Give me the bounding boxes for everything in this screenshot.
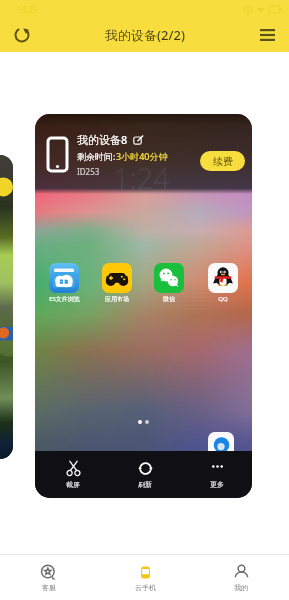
button[interactable]: 1:24 bbox=[35, 114, 252, 498]
button[interactable]: 云手机 bbox=[97, 555, 193, 600]
button[interactable]: 截屏 bbox=[57, 451, 89, 498]
button[interactable]: 客服 bbox=[0, 555, 97, 600]
staticText: 刷新 bbox=[138, 480, 152, 489]
button[interactable] bbox=[0, 155, 13, 459]
staticText: QQ bbox=[218, 295, 228, 303]
staticText: 应用市场 bbox=[105, 295, 129, 303]
staticText: 剩余时间: bbox=[77, 150, 116, 162]
button[interactable]: QQ bbox=[205, 263, 241, 303]
staticText: 客服 bbox=[42, 583, 56, 592]
button[interactable]: 应用市场 bbox=[99, 263, 135, 303]
button[interactable]: 更多 bbox=[201, 451, 233, 498]
staticText: 截屏 bbox=[66, 480, 80, 489]
button[interactable]: Menu bbox=[251, 19, 283, 51]
staticText: 1:24 bbox=[113, 158, 170, 197]
button[interactable]: ES文件浏览 bbox=[46, 263, 82, 303]
staticText: ID253 bbox=[77, 166, 100, 177]
button[interactable]: 续费 bbox=[200, 151, 245, 171]
staticText: 13:25 bbox=[17, 4, 38, 15]
staticText: 我的 bbox=[234, 583, 248, 592]
staticText: 微信 bbox=[163, 295, 175, 303]
staticText: 续费 bbox=[213, 155, 233, 168]
staticText: 我的设备8 bbox=[77, 132, 128, 147]
button[interactable]: Refresh bbox=[6, 19, 38, 51]
button[interactable]: 刷新 bbox=[129, 451, 161, 498]
button[interactable]: 我的 bbox=[193, 555, 289, 600]
button[interactable]: Rename device bbox=[133, 135, 143, 145]
staticText: ES文件浏览 bbox=[49, 295, 80, 303]
button[interactable]: 微信 bbox=[151, 263, 187, 303]
staticText: 更多 bbox=[210, 480, 224, 489]
staticText: 云手机 bbox=[135, 583, 156, 592]
staticText: 我的设备(2/2) bbox=[105, 26, 185, 44]
staticText: 3小时40分钟 bbox=[116, 150, 168, 162]
